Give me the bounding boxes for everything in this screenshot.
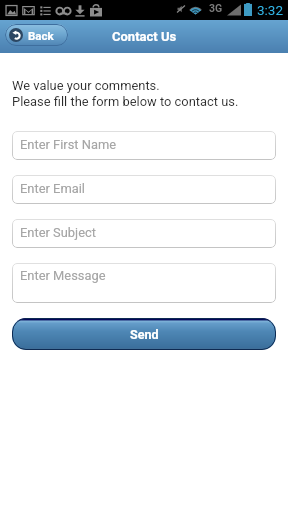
staticText: Send: [130, 327, 159, 342]
staticText: Enter Message: [20, 268, 106, 283]
staticText: Enter First Name: [20, 137, 117, 152]
button[interactable]: Enter Email: [12, 175, 276, 204]
staticText: Contact Us: [112, 29, 177, 44]
button[interactable]: Send: [12, 318, 276, 350]
staticText: Enter Subject: [20, 225, 96, 240]
button[interactable]: Back: [5, 24, 68, 46]
staticText: Enter Email: [20, 181, 85, 196]
button[interactable]: Enter First Name: [12, 131, 276, 160]
staticText: We value your comments.: [12, 78, 160, 93]
staticText: 3:32: [257, 2, 284, 18]
staticText: 3G: [209, 2, 223, 14]
staticText: Please fill the form below to contact us…: [12, 94, 239, 109]
staticText: Back: [28, 29, 54, 42]
button[interactable]: Enter Message: [12, 263, 276, 303]
button[interactable]: Enter Subject: [12, 219, 276, 248]
